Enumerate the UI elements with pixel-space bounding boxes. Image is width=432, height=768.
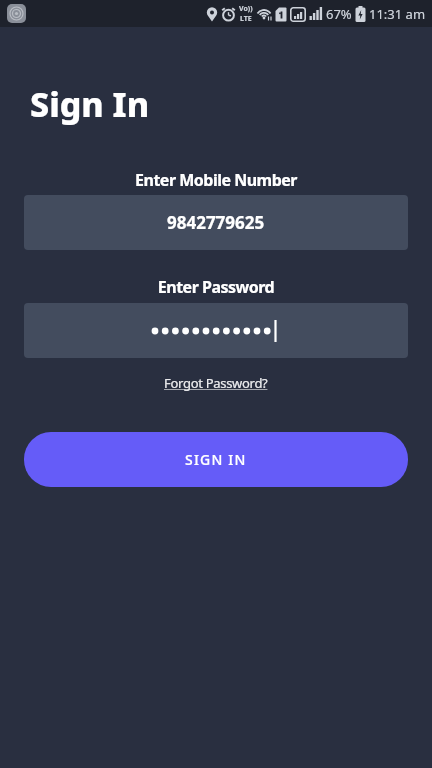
- staticText: Sign In: [30, 81, 150, 127]
- staticText: Vo)): [239, 4, 253, 14]
- staticText: 67%: [326, 5, 352, 23]
- staticText: 9842779625: [167, 211, 265, 234]
- staticText: 11:31 am: [369, 5, 426, 23]
- staticText: SIGN IN: [185, 450, 247, 469]
- button[interactable]: [24, 303, 408, 358]
- staticText: Enter Password: [0, 276, 432, 298]
- staticText: Enter Mobile Number: [0, 169, 432, 191]
- button[interactable]: SIGN IN: [24, 432, 408, 487]
- button[interactable]: 9842779625: [24, 195, 408, 250]
- staticText: LTE: [240, 14, 252, 24]
- button[interactable]: Forgot Password?: [164, 374, 268, 392]
